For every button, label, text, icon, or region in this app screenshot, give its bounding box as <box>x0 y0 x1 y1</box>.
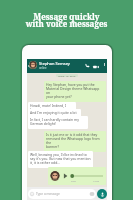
button[interactable]: Is it just me or is it odd that they rem… <box>44 131 106 152</box>
staticText: And I'm enjoying it quite a lot <box>30 110 77 115</box>
staticText: Type a message <box>36 192 60 196</box>
staticText: online <box>39 66 47 70</box>
button[interactable]: Back <box>26 63 32 69</box>
button[interactable]: Howdi, mate! Indeed, I have. <box>28 102 76 115</box>
staticText: 14:52 <box>93 179 100 182</box>
button[interactable]: Well, knowing you, I'd be inclined to sa… <box>28 151 93 168</box>
button[interactable]: 0:06 <box>48 167 106 185</box>
button[interactable]: Hey Stephan, have you put the Material D… <box>44 81 106 102</box>
button[interactable]: In fact, I can hardly contain my German … <box>28 116 88 129</box>
staticText: Howdi, mate! Indeed, I have. <box>30 103 74 112</box>
button[interactable]: Record voice message <box>97 189 107 199</box>
staticText: 0:06 <box>71 179 76 182</box>
button[interactable]: Video call <box>93 64 99 70</box>
staticText: Message quickly with voice messages <box>0 11 133 29</box>
button[interactable]: Call <box>85 63 90 68</box>
staticText: Stephan Semsey <box>39 61 70 66</box>
staticText: In fact, I can hardly contain my German … <box>30 117 79 126</box>
staticText: APRIL 18, 2015 <box>58 74 76 77</box>
button[interactable]: And I'm enjoying it quite a lot <box>28 109 81 118</box>
button[interactable]: More options <box>103 63 106 66</box>
button[interactable]: Type a message <box>30 189 94 199</box>
staticText: Hey Stephan, have you put the Material D… <box>46 82 104 99</box>
staticText: Is it just me or is it odd that they rem… <box>46 132 104 149</box>
staticText: 14:41 <box>67 112 74 114</box>
staticText: Well, knowing you, I'd be inclined to sa… <box>30 152 91 165</box>
